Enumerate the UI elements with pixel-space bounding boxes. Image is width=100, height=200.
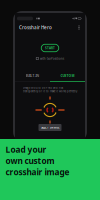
button[interactable]: START [41,44,59,52]
staticText: Crosshair Hero [19,24,52,31]
staticText: SELECT IMAGE [41,126,59,129]
button[interactable]: with GoPositions [36,56,64,61]
button[interactable]: SELECT IMAGE [38,124,61,131]
button[interactable]: BUILT-IN [15,73,50,78]
button[interactable]: More options [76,23,82,32]
staticText: with GoPositions [40,56,64,61]
staticText: BUILT-IN [25,73,39,78]
staticText: CUSTOM [60,73,74,78]
staticText: Image should be PNG and has transparency… [23,86,77,93]
button[interactable]: CUSTOM [50,73,85,78]
staticText: START [45,46,55,50]
staticText: Load your own custom crosshair image [5,144,69,178]
